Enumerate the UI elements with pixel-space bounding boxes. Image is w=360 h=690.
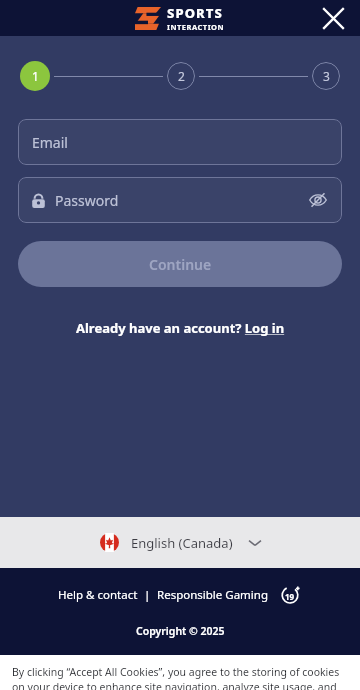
button[interactable]: 2 xyxy=(167,62,195,90)
staticText: Already have an account? Log in xyxy=(76,319,285,337)
button[interactable]: Email xyxy=(18,119,342,165)
button[interactable]: Continue xyxy=(18,241,342,287)
staticText: INTERACTION xyxy=(167,22,225,32)
staticText: By clicking “Accept All Cookies”, you ag… xyxy=(12,665,348,690)
staticText: 19 xyxy=(285,591,295,602)
button[interactable]: English (Canada) xyxy=(0,517,360,568)
button[interactable]: Close xyxy=(318,3,348,33)
staticText: Copyright © 2025 xyxy=(136,624,225,638)
button[interactable]: Password xyxy=(18,177,342,223)
button[interactable]: Responsible Gaming xyxy=(157,587,268,603)
button[interactable]: 1 xyxy=(20,61,50,91)
button[interactable]: 3 xyxy=(312,62,340,90)
staticText: Responsible Gaming xyxy=(157,587,268,603)
button[interactable]: Show password xyxy=(307,189,329,211)
staticText: | xyxy=(138,587,157,603)
staticText: Help & contact xyxy=(58,587,138,603)
button[interactable]: 19 plus age restriction xyxy=(280,584,302,606)
staticText: 3 xyxy=(323,68,330,84)
staticText: Password xyxy=(55,191,307,210)
staticText: 2 xyxy=(178,68,185,84)
staticText: Continue xyxy=(149,255,212,274)
staticText: Email xyxy=(32,133,68,152)
button[interactable]: Help & contact xyxy=(58,587,138,603)
staticText: 1 xyxy=(32,68,39,84)
staticText: English (Canada) xyxy=(131,534,233,552)
staticText: SPORTS xyxy=(167,4,223,22)
button[interactable]: Already have an account? Log in xyxy=(0,319,360,337)
